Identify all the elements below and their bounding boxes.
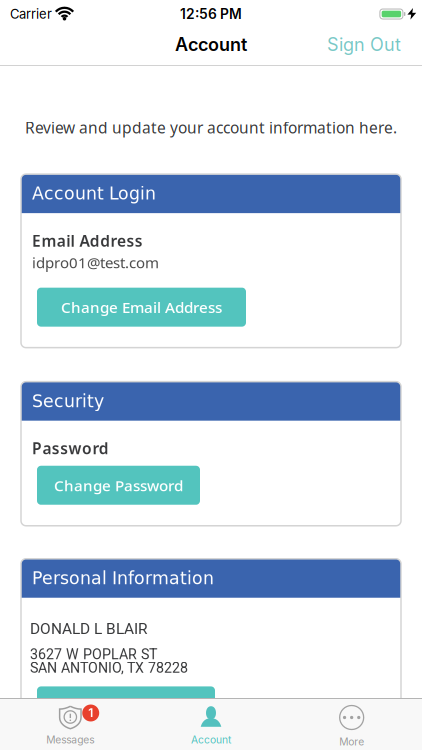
staticText: Password <box>32 438 109 459</box>
staticText: 3627 W POPLAR ST SAN ANTONIO, TX 78228 <box>30 648 188 674</box>
button[interactable]: Change Mailing Address <box>37 686 215 725</box>
staticText: Account <box>175 34 247 55</box>
staticText: Messages <box>46 733 94 746</box>
staticText: Change Mailing Address <box>38 696 214 716</box>
staticText: Change Email Address <box>61 297 222 317</box>
button[interactable]: Account <box>141 699 281 750</box>
staticText: DONALD L BLAIR <box>30 620 147 638</box>
staticText: Sign Out <box>327 34 401 55</box>
staticText: Change Password <box>54 475 183 496</box>
staticText: Security <box>32 391 104 411</box>
button[interactable]: Change Email Address <box>37 288 246 327</box>
staticText: More <box>339 735 364 748</box>
staticText: 1 <box>88 706 93 720</box>
button[interactable]: More <box>281 699 422 750</box>
staticText: Carrier <box>10 6 52 22</box>
staticText: Personal Information <box>32 568 214 588</box>
staticText: Account <box>191 733 231 746</box>
button[interactable]: Sign Out <box>327 34 401 55</box>
button[interactable]: Change Password <box>37 466 200 505</box>
button[interactable]: 1 <box>0 699 141 750</box>
staticText: idpro01@test.com <box>32 252 159 273</box>
staticText: Review and update your account informati… <box>25 117 397 138</box>
staticText: Account Login <box>32 183 156 204</box>
staticText: Email Address <box>32 230 143 251</box>
staticText: 12:56 PM <box>180 6 242 22</box>
